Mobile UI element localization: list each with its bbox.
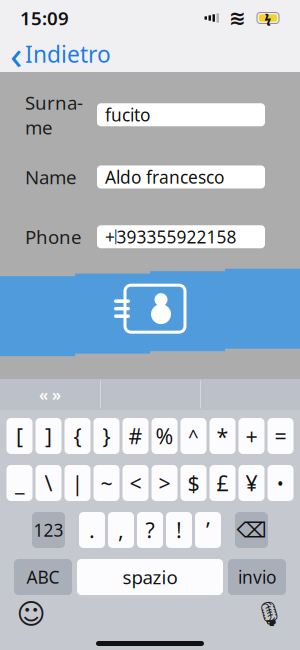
button[interactable]: }: [93, 418, 119, 454]
staticText: \: [44, 469, 52, 497]
staticText: ?: [145, 516, 154, 544]
button[interactable]: ABC: [14, 559, 72, 595]
button[interactable]: Emoji: [14, 597, 48, 631]
button[interactable]: $: [180, 465, 206, 501]
staticText: Indietro: [25, 39, 111, 69]
staticText: =: [274, 422, 286, 450]
staticText: _: [15, 469, 24, 497]
staticText: invio: [238, 565, 276, 588]
staticText: }: [102, 422, 110, 450]
button[interactable]: =: [267, 418, 293, 454]
staticText: 393355922158: [116, 225, 236, 248]
button[interactable]: •: [267, 465, 293, 501]
staticText: %: [155, 422, 173, 450]
button[interactable]: #: [122, 418, 148, 454]
staticText: {: [73, 422, 81, 450]
staticText: ^: [188, 424, 199, 448]
staticText: ⌫: [236, 518, 266, 542]
button[interactable]: .: [79, 512, 105, 548]
button[interactable]: {: [64, 418, 90, 454]
staticText: $: [187, 469, 199, 497]
staticText: Surname: [25, 90, 83, 140]
staticText: 15:09: [20, 6, 69, 30]
staticText: +: [105, 225, 115, 248]
staticText: Aldo francesco: [105, 165, 224, 188]
button[interactable]: +: [238, 418, 264, 454]
staticText: <: [129, 469, 141, 497]
staticText: Phone: [25, 224, 82, 249]
button[interactable]: fucito: [97, 103, 265, 126]
staticText: ]: [45, 422, 52, 450]
button[interactable]: *: [209, 418, 235, 454]
staticText: spazio: [122, 565, 177, 589]
staticText: +: [245, 422, 257, 450]
button[interactable]: Aldo francesco: [97, 165, 265, 188]
button[interactable]: %: [151, 418, 177, 454]
staticText: ¥: [245, 469, 257, 497]
staticText: !: [176, 516, 182, 544]
staticText: fucito: [105, 103, 150, 126]
button[interactable]: !: [166, 512, 192, 548]
button[interactable]: invio: [228, 559, 286, 595]
staticText: ABC: [26, 565, 59, 588]
button[interactable]: ¥: [238, 465, 264, 501]
button[interactable]: \: [35, 465, 61, 501]
button[interactable]: <: [122, 465, 148, 501]
staticText: |: [71, 469, 83, 497]
button[interactable]: _: [6, 465, 32, 501]
staticText: >: [158, 469, 170, 497]
staticText: ,: [118, 516, 124, 544]
staticText: 123: [33, 518, 63, 541]
staticText: ~: [100, 469, 112, 497]
staticText: 🎙: [254, 600, 284, 628]
button[interactable]: 123: [32, 512, 65, 548]
button[interactable]: +: [97, 225, 265, 248]
button[interactable]: ‹: [0, 37, 123, 71]
staticText: *: [216, 422, 228, 450]
staticText: Name: [25, 165, 77, 189]
button[interactable]: ’: [195, 512, 221, 548]
staticText: •: [277, 471, 284, 494]
staticText: ☺: [16, 598, 45, 630]
button[interactable]: £: [209, 465, 235, 501]
staticText: ‹: [10, 27, 22, 80]
staticText: .: [89, 516, 95, 544]
staticText: ’: [206, 516, 210, 544]
button[interactable]: spazio: [77, 559, 223, 595]
staticText: ≋: [229, 7, 246, 29]
button[interactable]: ?: [137, 512, 163, 548]
button[interactable]: Delete: [235, 512, 268, 548]
button[interactable]: |: [64, 465, 90, 501]
staticText: £: [216, 469, 228, 497]
button[interactable]: ^: [180, 418, 206, 454]
staticText: #: [128, 422, 142, 450]
staticText: « »: [39, 384, 61, 405]
button[interactable]: « »: [0, 379, 100, 410]
button[interactable]: >: [151, 465, 177, 501]
button[interactable]: [: [6, 418, 32, 454]
button[interactable]: ~: [93, 465, 119, 501]
button[interactable]: ,: [108, 512, 134, 548]
staticText: ϟ: [264, 10, 271, 26]
button[interactable]: Dictation: [252, 597, 286, 631]
button[interactable]: ]: [35, 418, 61, 454]
staticText: [: [16, 422, 23, 450]
